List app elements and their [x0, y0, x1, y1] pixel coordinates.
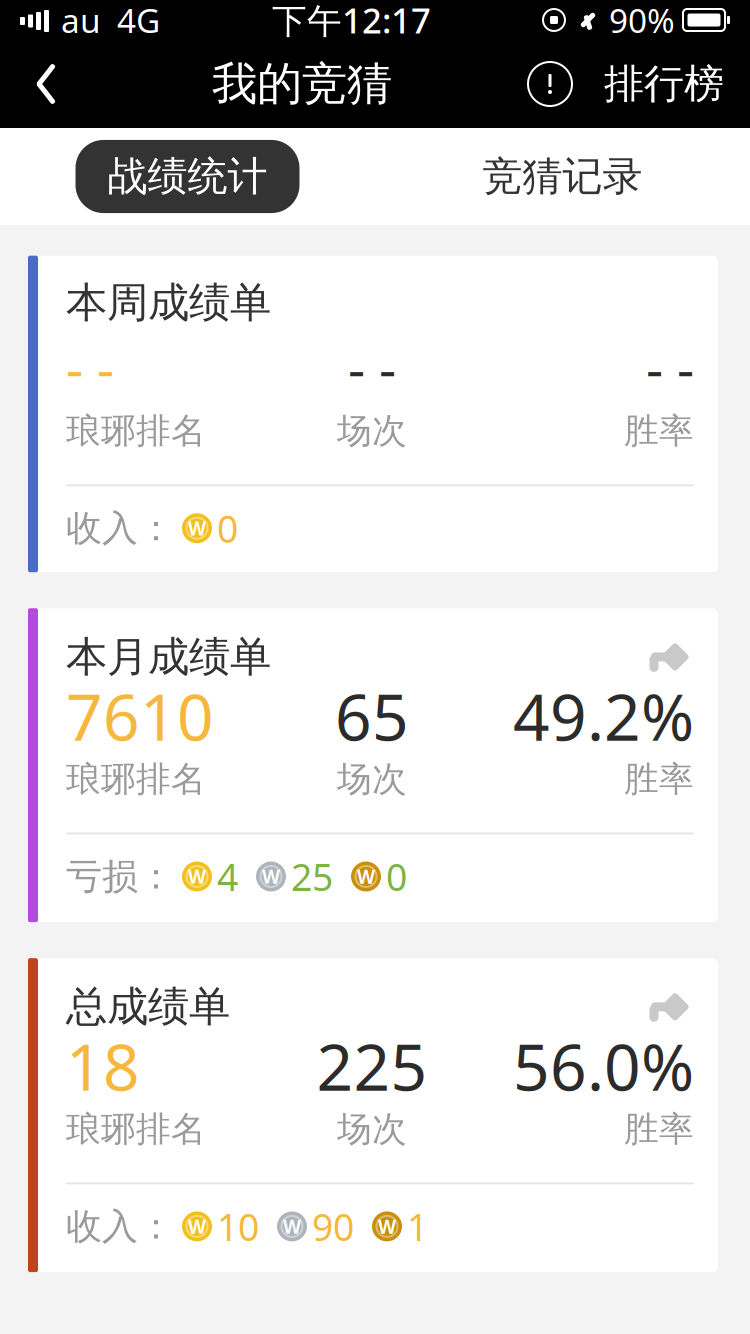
- button[interactable]: 分享: [638, 985, 694, 1029]
- staticText: 4: [217, 852, 238, 901]
- staticText: 90: [312, 1202, 354, 1251]
- staticText: 琅琊排名: [66, 410, 206, 452]
- staticText: W: [262, 864, 280, 889]
- button[interactable]: 排行榜: [588, 40, 740, 128]
- staticText: 90%: [609, 0, 675, 42]
- staticText: 本周成绩单: [66, 277, 271, 328]
- staticText: 胜率: [624, 1108, 694, 1150]
- staticText: 排行榜: [604, 59, 724, 108]
- staticText: 0: [217, 503, 238, 553]
- staticText: 49.2%: [513, 673, 694, 758]
- staticText: 竞猜记录: [482, 152, 642, 201]
- staticText: W: [188, 1214, 206, 1239]
- staticText: 场次: [337, 1108, 407, 1150]
- staticText: W: [283, 1214, 301, 1239]
- button[interactable]: 竞猜记录: [450, 140, 674, 213]
- staticText: W: [378, 1214, 396, 1239]
- staticText: au: [61, 0, 101, 42]
- staticText: - -: [646, 332, 694, 403]
- button[interactable]: 说明: [512, 40, 588, 128]
- staticText: 7610: [66, 673, 214, 758]
- staticText: 场次: [337, 410, 407, 452]
- staticText: 1: [407, 1202, 428, 1251]
- staticText: 65: [335, 673, 409, 758]
- staticText: 25: [291, 852, 333, 901]
- staticText: 琅琊排名: [66, 758, 206, 800]
- staticText: W: [188, 516, 206, 541]
- staticText: 胜率: [624, 758, 694, 800]
- staticText: W: [188, 864, 206, 889]
- staticText: 场次: [337, 758, 407, 800]
- staticText: W: [357, 864, 375, 889]
- staticText: 0: [386, 852, 407, 901]
- staticText: 我的竞猜: [212, 56, 392, 112]
- staticText: 本月成绩单: [66, 631, 271, 682]
- staticText: - -: [348, 332, 396, 403]
- staticText: 收入：: [66, 506, 174, 550]
- staticText: 225: [316, 1023, 427, 1108]
- staticText: 总成绩单: [66, 981, 230, 1032]
- staticText: 收入：: [66, 1204, 174, 1248]
- staticText: 56.0%: [513, 1023, 694, 1108]
- button[interactable]: 分享: [638, 635, 694, 679]
- staticText: - -: [66, 332, 114, 403]
- staticText: 10: [217, 1202, 259, 1251]
- staticText: 战绩统计: [107, 152, 267, 201]
- staticText: 下午12:17: [272, 0, 431, 43]
- staticText: 琅琊排名: [66, 1108, 206, 1150]
- button[interactable]: 战绩统计: [75, 140, 299, 213]
- staticText: 胜率: [624, 410, 694, 452]
- staticText: 4G: [117, 0, 160, 42]
- button[interactable]: 返回: [0, 40, 92, 128]
- staticText: 亏损：: [66, 854, 174, 899]
- staticText: 18: [66, 1023, 140, 1108]
